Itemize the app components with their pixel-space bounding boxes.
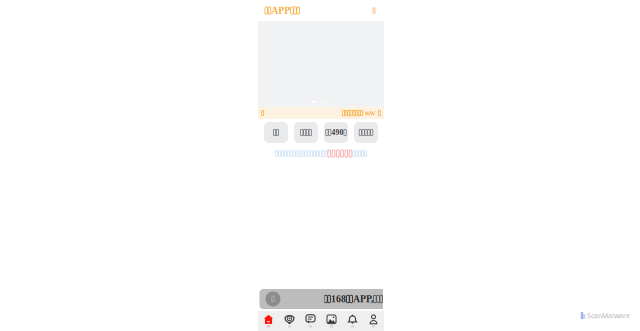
button[interactable]: Promotional announcement	[258, 289, 384, 311]
staticText: 490	[331, 128, 343, 137]
button[interactable]: Promotion notice	[275, 143, 367, 160]
button[interactable]: Photos	[321, 311, 342, 331]
staticText: APP,	[353, 293, 373, 304]
button[interactable]: Notifications	[342, 311, 363, 331]
button[interactable]: Nearby	[279, 311, 300, 331]
staticText: ScanMalware	[587, 311, 630, 320]
button[interactable]: More options	[370, 5, 378, 16]
staticText: 168	[331, 293, 346, 304]
button[interactable]: APP	[264, 2, 301, 19]
button[interactable]: ww'	[258, 107, 384, 119]
staticText: APP	[271, 5, 290, 16]
staticText: ww'	[365, 109, 377, 117]
button[interactable]: 490	[324, 122, 348, 143]
button[interactable]: Filter 1	[264, 122, 288, 143]
button[interactable]: Home	[258, 311, 279, 331]
button[interactable]: Filter 4	[354, 122, 378, 143]
button[interactable]: Filter 2	[294, 122, 318, 143]
button[interactable]: Messages	[300, 311, 321, 331]
button[interactable]: Profile	[363, 311, 384, 331]
